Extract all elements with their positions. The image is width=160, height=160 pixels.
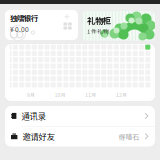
staticText: 10月 — [55, 91, 66, 98]
staticText: 通讯录 — [22, 110, 46, 122]
button[interactable]: 邀请好友 — [5, 126, 155, 146]
staticText: 礼物柜 — [87, 14, 111, 26]
button[interactable]: 通讯录 — [5, 106, 155, 126]
staticText: 邀请好友 — [22, 130, 54, 142]
staticText: 得喵石 — [118, 132, 139, 141]
button[interactable]: 礼物柜 — [82, 11, 155, 41]
staticText: 12月 — [116, 91, 127, 98]
staticText: 11月 — [85, 91, 96, 98]
staticText: ¥ 0.00 — [10, 24, 29, 34]
staticText: 独啸银行 — [10, 12, 38, 23]
button[interactable]: 独啸银行 — [5, 11, 78, 41]
staticText: 9月 — [27, 91, 35, 98]
staticText: 1 件礼物 — [87, 27, 109, 35]
